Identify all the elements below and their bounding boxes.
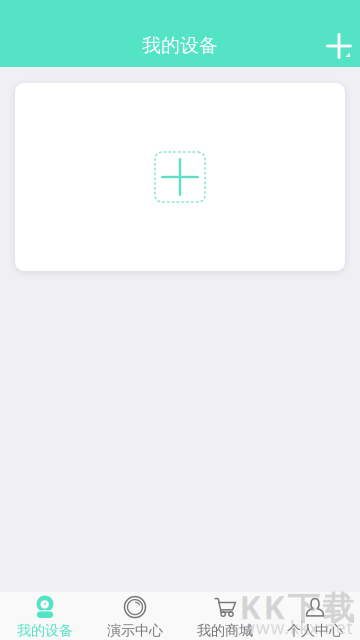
button[interactable]: 个人中心 — [270, 591, 360, 640]
button[interactable]: Add device — [318, 21, 360, 67]
button[interactable]: 我的设备 — [0, 591, 90, 640]
staticText: 我的设备 — [142, 34, 218, 57]
staticText: 演示中心 — [107, 622, 163, 639]
staticText: KK下载 — [239, 586, 354, 628]
staticText: 我的设备 — [17, 622, 73, 639]
button[interactable]: 我的商城 — [180, 591, 270, 640]
staticText: 我的商城 — [197, 622, 253, 639]
staticText: 个人中心 — [287, 622, 343, 639]
button[interactable]: 演示中心 — [90, 591, 180, 640]
staticText: www.kkx.net — [241, 616, 352, 639]
